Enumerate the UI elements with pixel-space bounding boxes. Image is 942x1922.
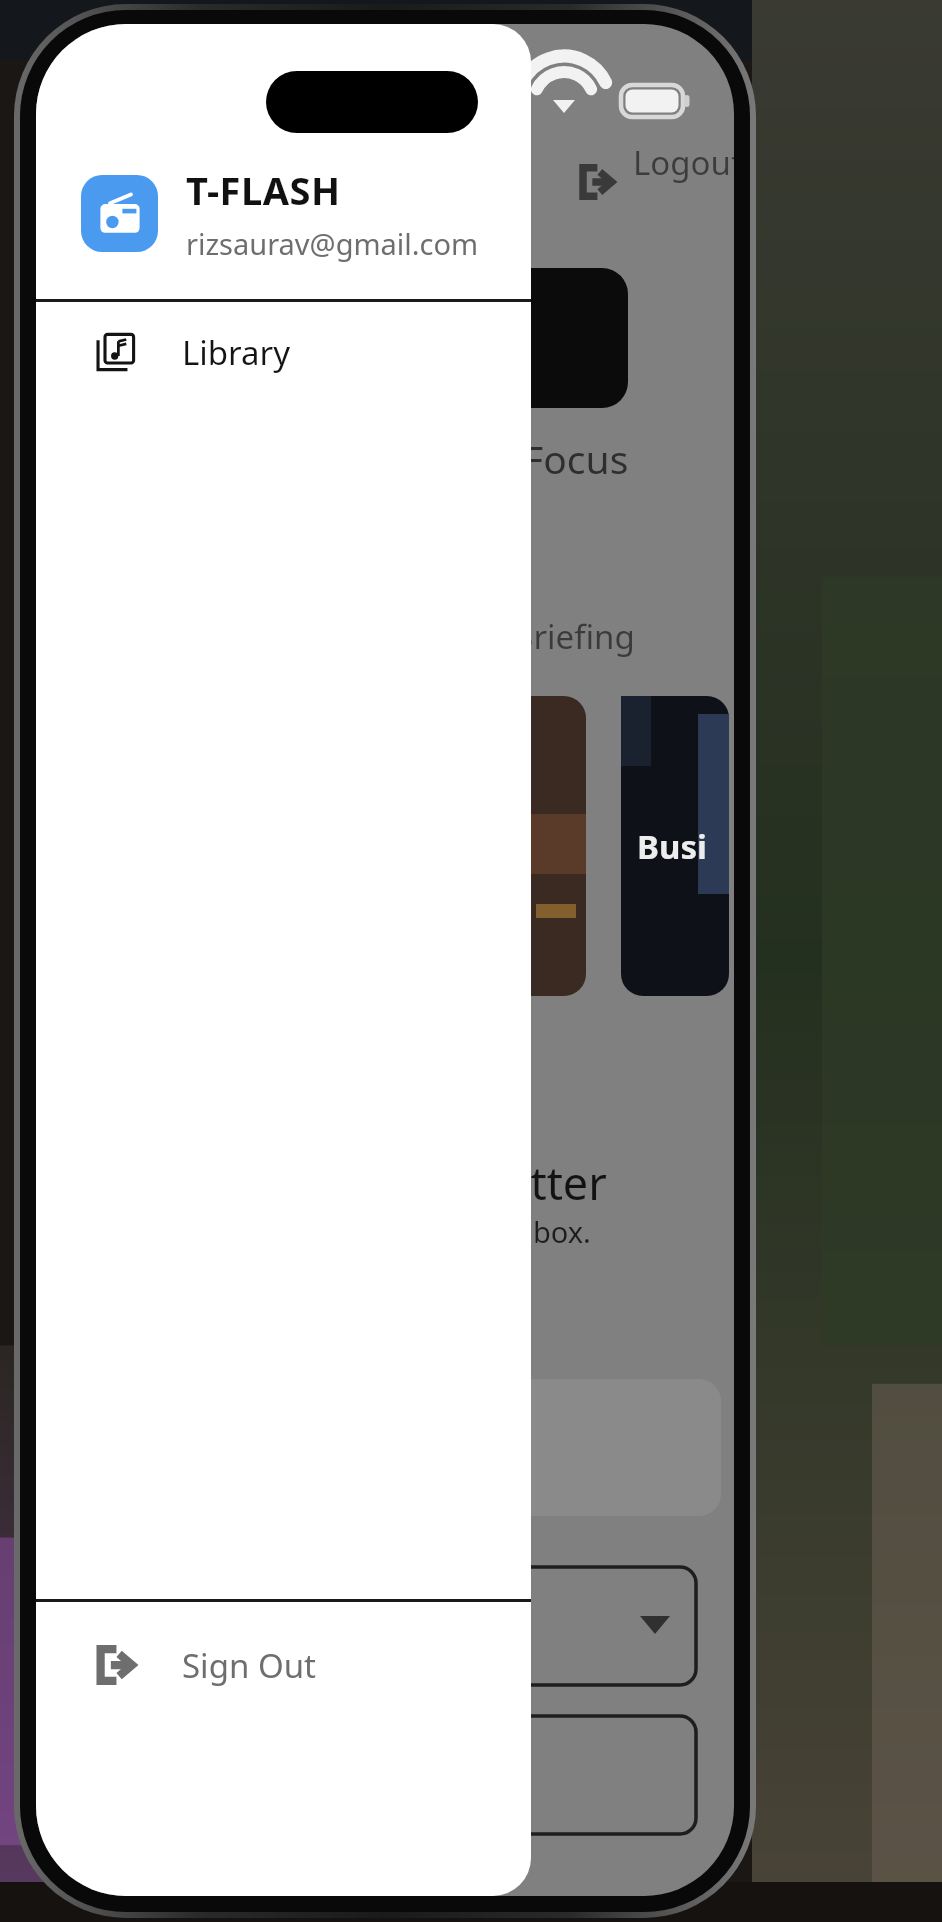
staticText: rizsaurav@gmail.com [186,224,479,263]
staticText: T-FLASH [186,164,341,216]
staticText: Focus [523,432,629,485]
staticText: Busi [637,824,707,869]
staticText: Briefing [512,614,635,659]
staticText: Sign Out [182,1643,316,1688]
staticText: etter [505,1152,607,1213]
button[interactable]: T-FLASH [36,164,531,299]
button[interactable]: Sign Out [36,1602,531,1728]
button[interactable]: Library [36,302,531,402]
staticText: Library [182,330,291,375]
staticText: Logout [633,140,734,185]
staticText: nbox. [515,1212,591,1251]
